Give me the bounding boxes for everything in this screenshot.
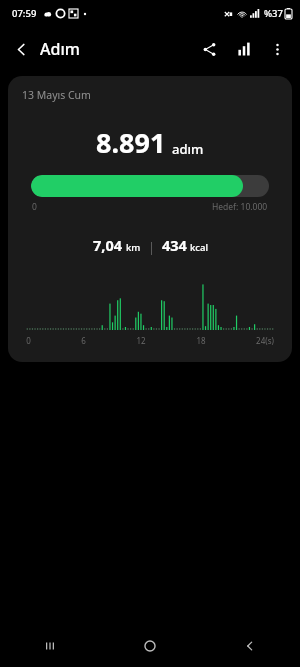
- staticText: Hedef: 10.000: [212, 201, 268, 213]
- staticText: 24(s): [256, 335, 274, 346]
- staticText: Adım: [40, 38, 80, 60]
- staticText: 0: [26, 335, 31, 346]
- button[interactable]: Share: [192, 32, 226, 66]
- staticText: 7,04: [93, 235, 123, 255]
- staticText: 0: [32, 201, 37, 213]
- button[interactable]: More options: [260, 32, 294, 66]
- staticText: adım: [172, 140, 204, 158]
- staticText: %37: [264, 7, 283, 20]
- button[interactable]: Back: [200, 625, 300, 667]
- button[interactable]: 13 Mayıs Cum: [8, 76, 292, 362]
- staticText: 434: [162, 235, 187, 255]
- staticText: 8.891: [96, 124, 166, 161]
- staticText: 18: [196, 335, 206, 346]
- staticText: 13 Mayıs Cum: [22, 88, 91, 102]
- staticText: 6: [81, 335, 86, 346]
- staticText: km: [126, 241, 141, 254]
- button[interactable]: Recent apps: [0, 625, 100, 667]
- button[interactable]: Home: [100, 625, 200, 667]
- staticText: kcal: [190, 241, 208, 254]
- button[interactable]: History chart: [226, 32, 260, 66]
- staticText: 12: [136, 335, 146, 346]
- staticText: 07:59: [12, 7, 37, 20]
- button[interactable]: Back: [0, 34, 35, 65]
